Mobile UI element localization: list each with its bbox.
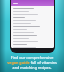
button[interactable] — [11, 40, 54, 43]
button[interactable] — [11, 16, 54, 19]
button[interactable]: Find our comprehensive vegan guide full … — [0, 53, 64, 72]
button[interactable] — [11, 7, 54, 10]
button[interactable] — [11, 31, 54, 34]
button[interactable] — [11, 10, 54, 13]
button[interactable] — [11, 37, 54, 40]
button[interactable] — [11, 28, 54, 31]
button[interactable]: App bar — [11, 0, 54, 48]
button[interactable]: App bar — [11, 0, 54, 6]
button[interactable] — [11, 13, 54, 16]
button[interactable] — [11, 25, 54, 28]
button[interactable] — [11, 34, 54, 37]
button[interactable] — [11, 46, 54, 48]
button[interactable] — [11, 22, 54, 25]
button[interactable] — [11, 43, 54, 46]
staticText: Find our comprehensive vegan guide full … — [7, 55, 57, 70]
button[interactable] — [11, 19, 54, 22]
